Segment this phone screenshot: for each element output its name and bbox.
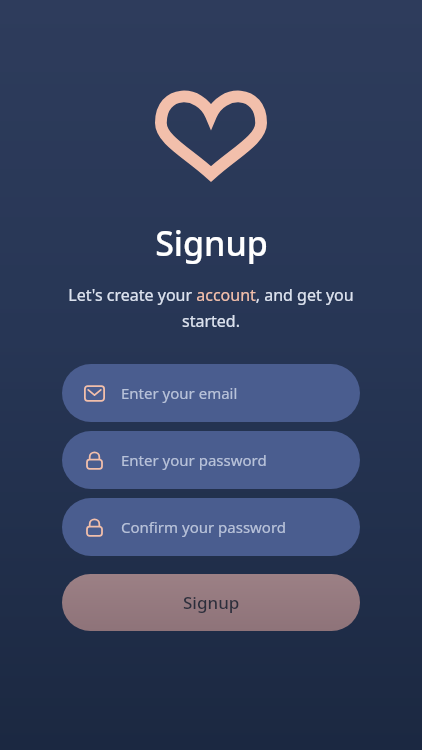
button[interactable]: Confirm your password: [62, 498, 360, 556]
staticText: Enter your email: [121, 383, 238, 403]
staticText: Confirm your password: [121, 517, 287, 537]
staticText: Signup: [155, 220, 268, 266]
button[interactable]: Signup: [62, 574, 360, 631]
button[interactable]: Enter your password: [62, 431, 360, 489]
staticText: Let's create your account, and get you s…: [50, 284, 372, 332]
button[interactable]: Enter your email: [62, 364, 360, 422]
staticText: Enter your password: [121, 450, 267, 470]
staticText: Signup: [183, 591, 240, 614]
